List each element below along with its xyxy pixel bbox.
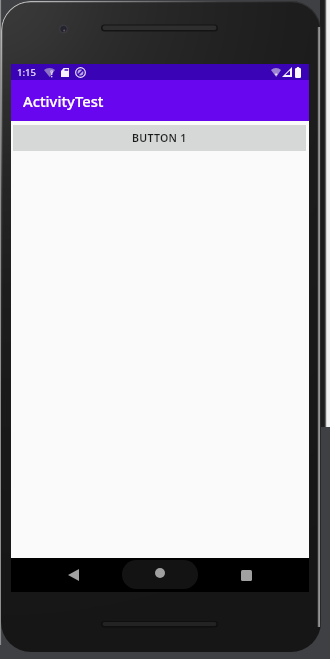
staticText: BUTTON 1 bbox=[132, 131, 187, 145]
button[interactable]: BUTTON 1 bbox=[13, 125, 306, 151]
button[interactable]: Back bbox=[62, 564, 84, 586]
staticText: ActivityTest bbox=[23, 91, 104, 111]
button[interactable]: Recent apps bbox=[235, 564, 257, 586]
staticText: 1:15 bbox=[17, 66, 37, 79]
button[interactable]: Home bbox=[122, 560, 198, 589]
